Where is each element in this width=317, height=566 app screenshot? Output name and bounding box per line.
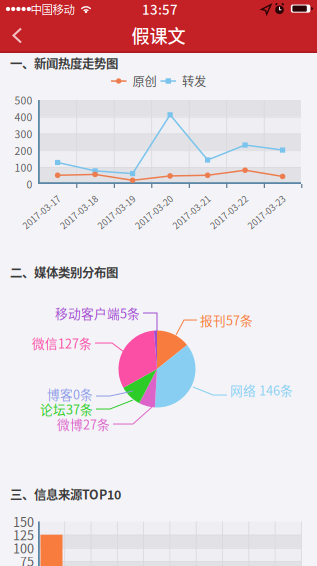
staticText: 2017-03-20 [131, 206, 177, 218]
staticText: 微信127条 [32, 334, 92, 352]
staticText: 一、新闻热度走势图 [10, 54, 118, 72]
staticText: 博客0条 [47, 385, 93, 403]
staticText: 移动客户端5条 [55, 304, 140, 322]
staticText: 微博27条 [57, 415, 110, 433]
staticText: 中国移动 [30, 1, 74, 17]
staticText: 150 [13, 512, 34, 531]
staticText: 75 [20, 552, 34, 566]
staticText: 2017-03-21 [168, 206, 214, 218]
staticText: 400 [14, 109, 32, 124]
staticText: 200 [14, 143, 32, 158]
staticText: 300 [14, 126, 32, 141]
staticText: 13:57 [142, 0, 178, 19]
staticText: 2017-03-23 [243, 206, 289, 218]
staticText: 转发 [182, 72, 206, 90]
staticText: 三、信息来源TOP10 [10, 485, 121, 503]
staticText: 2017-03-22 [206, 206, 252, 218]
staticText: 125 [13, 525, 34, 544]
staticText: 0 [26, 176, 32, 192]
staticText: 100 [13, 539, 34, 557]
button[interactable]: Back [0, 18, 44, 53]
staticText: 假课文 [131, 22, 185, 48]
staticText: 论坛37条 [40, 400, 93, 418]
staticText: 100 [14, 160, 32, 175]
staticText: 二、媒体类别分布图 [10, 263, 118, 281]
staticText: 原创 [132, 72, 156, 90]
staticText: 网络 146条 [230, 381, 293, 399]
staticText: 2017-03-18 [56, 206, 102, 218]
staticText: 报刊57条 [200, 311, 253, 329]
staticText: 500 [14, 92, 32, 108]
staticText: 2017-03-19 [93, 206, 139, 218]
staticText: 2017-03-17 [18, 206, 64, 218]
